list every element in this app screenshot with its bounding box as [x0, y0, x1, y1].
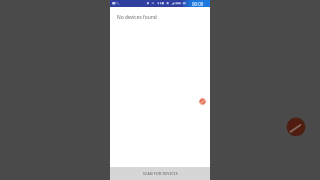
button[interactable]: SCAN FOR DEVICES — [110, 167, 210, 180]
staticText: No devices found — [117, 14, 157, 21]
button[interactable]: Scan for devices — [199, 98, 206, 105]
staticText: SCAN FOR DEVICES — [143, 171, 178, 176]
staticText: 00:00 — [192, 1, 204, 7]
